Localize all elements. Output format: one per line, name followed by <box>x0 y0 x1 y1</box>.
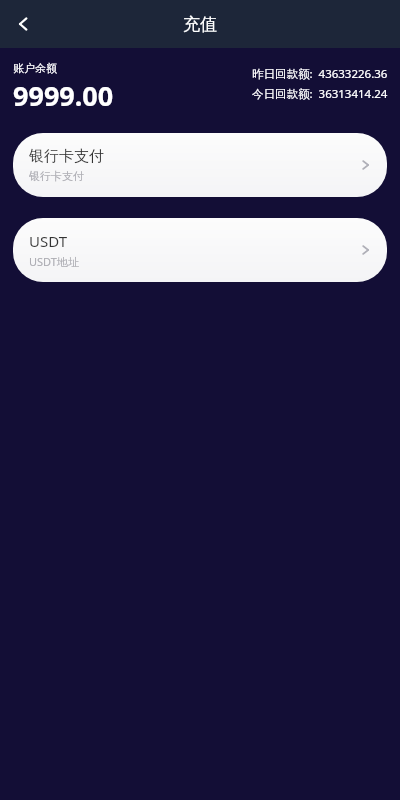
staticText: USDT <box>29 231 68 251</box>
staticText: USDT地址 <box>29 254 79 269</box>
staticText: 银行卡支付 <box>29 169 84 183</box>
button[interactable]: Back <box>0 0 48 48</box>
staticText: 今日回款额: 36313414.24 <box>252 86 388 102</box>
staticText: 9999.00 <box>13 77 114 114</box>
staticText: 充值 <box>183 14 217 35</box>
button[interactable]: USDT <box>13 218 387 282</box>
staticText: 账户余额 <box>13 61 57 75</box>
button[interactable]: 银行卡支付 <box>13 133 387 197</box>
staticText: 昨日回款额: 43633226.36 <box>252 66 388 82</box>
staticText: 银行卡支付 <box>29 147 104 166</box>
